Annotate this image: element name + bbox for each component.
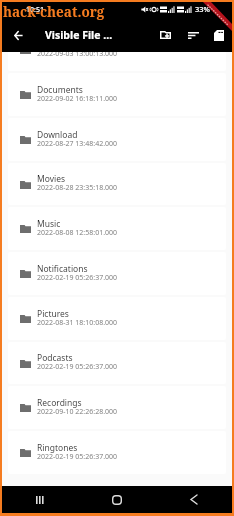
staticText: 2022-02-19 05:26:37.000	[37, 452, 118, 462]
button[interactable]: Podcasts	[8, 342, 226, 384]
staticText: Music	[37, 218, 61, 230]
button[interactable]: Recordings	[8, 386, 226, 429]
button[interactable]: Pictures	[8, 297, 226, 340]
button[interactable]: Back	[179, 486, 209, 513]
staticText: 2022-08-08 12:58:01.000	[37, 228, 118, 238]
staticText: Visible File …	[45, 28, 113, 42]
button[interactable]: Home	[102, 486, 132, 513]
staticText: Ringtones	[37, 442, 78, 454]
button[interactable]: Music	[8, 207, 226, 250]
staticText: 33%	[195, 4, 210, 14]
button[interactable]: Ringtones	[8, 431, 226, 474]
staticText: 10:51	[26, 5, 44, 15]
staticText: Documents	[37, 84, 83, 96]
staticText: 2022-08-28 23:35:18.000	[37, 183, 118, 193]
button[interactable]: Documents	[8, 73, 226, 116]
staticText: 2022-02-19 05:26:37.000	[37, 273, 118, 283]
staticText: Notifications	[37, 263, 88, 275]
staticText: Pictures	[37, 308, 69, 320]
button[interactable]: Movies	[8, 163, 226, 205]
staticText: 2022-09-03 13:00:13.000	[37, 52, 118, 59]
button[interactable]: Sort	[179, 20, 207, 50]
staticText: Recordings	[37, 397, 82, 409]
staticText: Movies	[37, 173, 66, 185]
staticText: 2022-08-27 13:48:42.000	[37, 139, 118, 149]
button[interactable]: Notifications	[8, 252, 226, 295]
staticText: hack-cheat.org	[3, 3, 105, 21]
button[interactable]: Create new folder	[152, 20, 179, 50]
staticText: 2022-09-10 22:26:28.000	[37, 407, 118, 417]
button[interactable]: Recents	[25, 486, 55, 513]
button[interactable]: Alarms	[8, 52, 226, 71]
staticText: Podcasts	[37, 352, 73, 364]
button[interactable]: Back	[2, 20, 34, 50]
button[interactable]: Download	[8, 118, 226, 161]
button[interactable]: New file	[207, 20, 230, 50]
staticText: 2022-08-31 18:10:08.000	[37, 318, 118, 328]
staticText: 2022-09-02 16:18:11.000	[37, 94, 118, 104]
staticText: 2022-02-19 05:26:37.000	[37, 362, 118, 372]
staticText: Download	[37, 129, 78, 141]
